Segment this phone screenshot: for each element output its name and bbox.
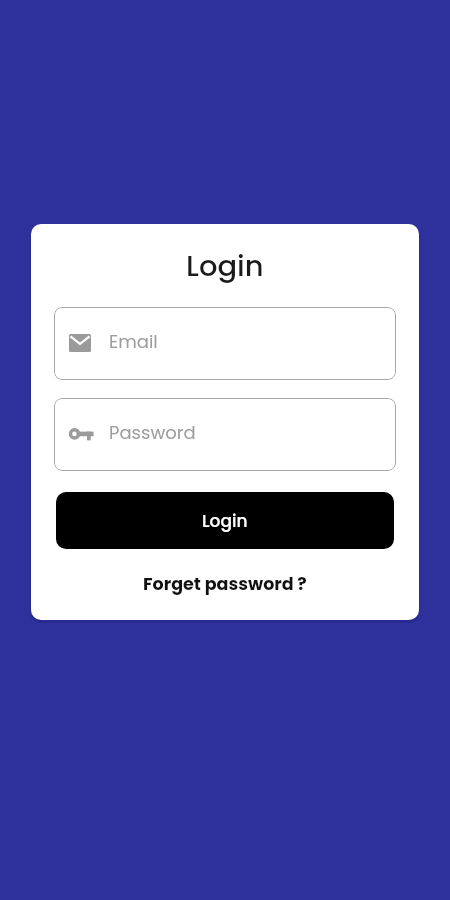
button[interactable]: Email [54,307,396,380]
staticText: Login [202,509,248,533]
other: Email [69,334,91,352]
staticText: Password [109,420,196,445]
staticText: Login [186,246,264,287]
other: Password [69,427,94,441]
button[interactable]: Password [54,398,396,471]
button[interactable]: Forget password ? [139,568,311,601]
button[interactable]: Login [56,492,394,549]
staticText: Forget password ? [143,572,307,597]
staticText: Email [109,329,158,354]
